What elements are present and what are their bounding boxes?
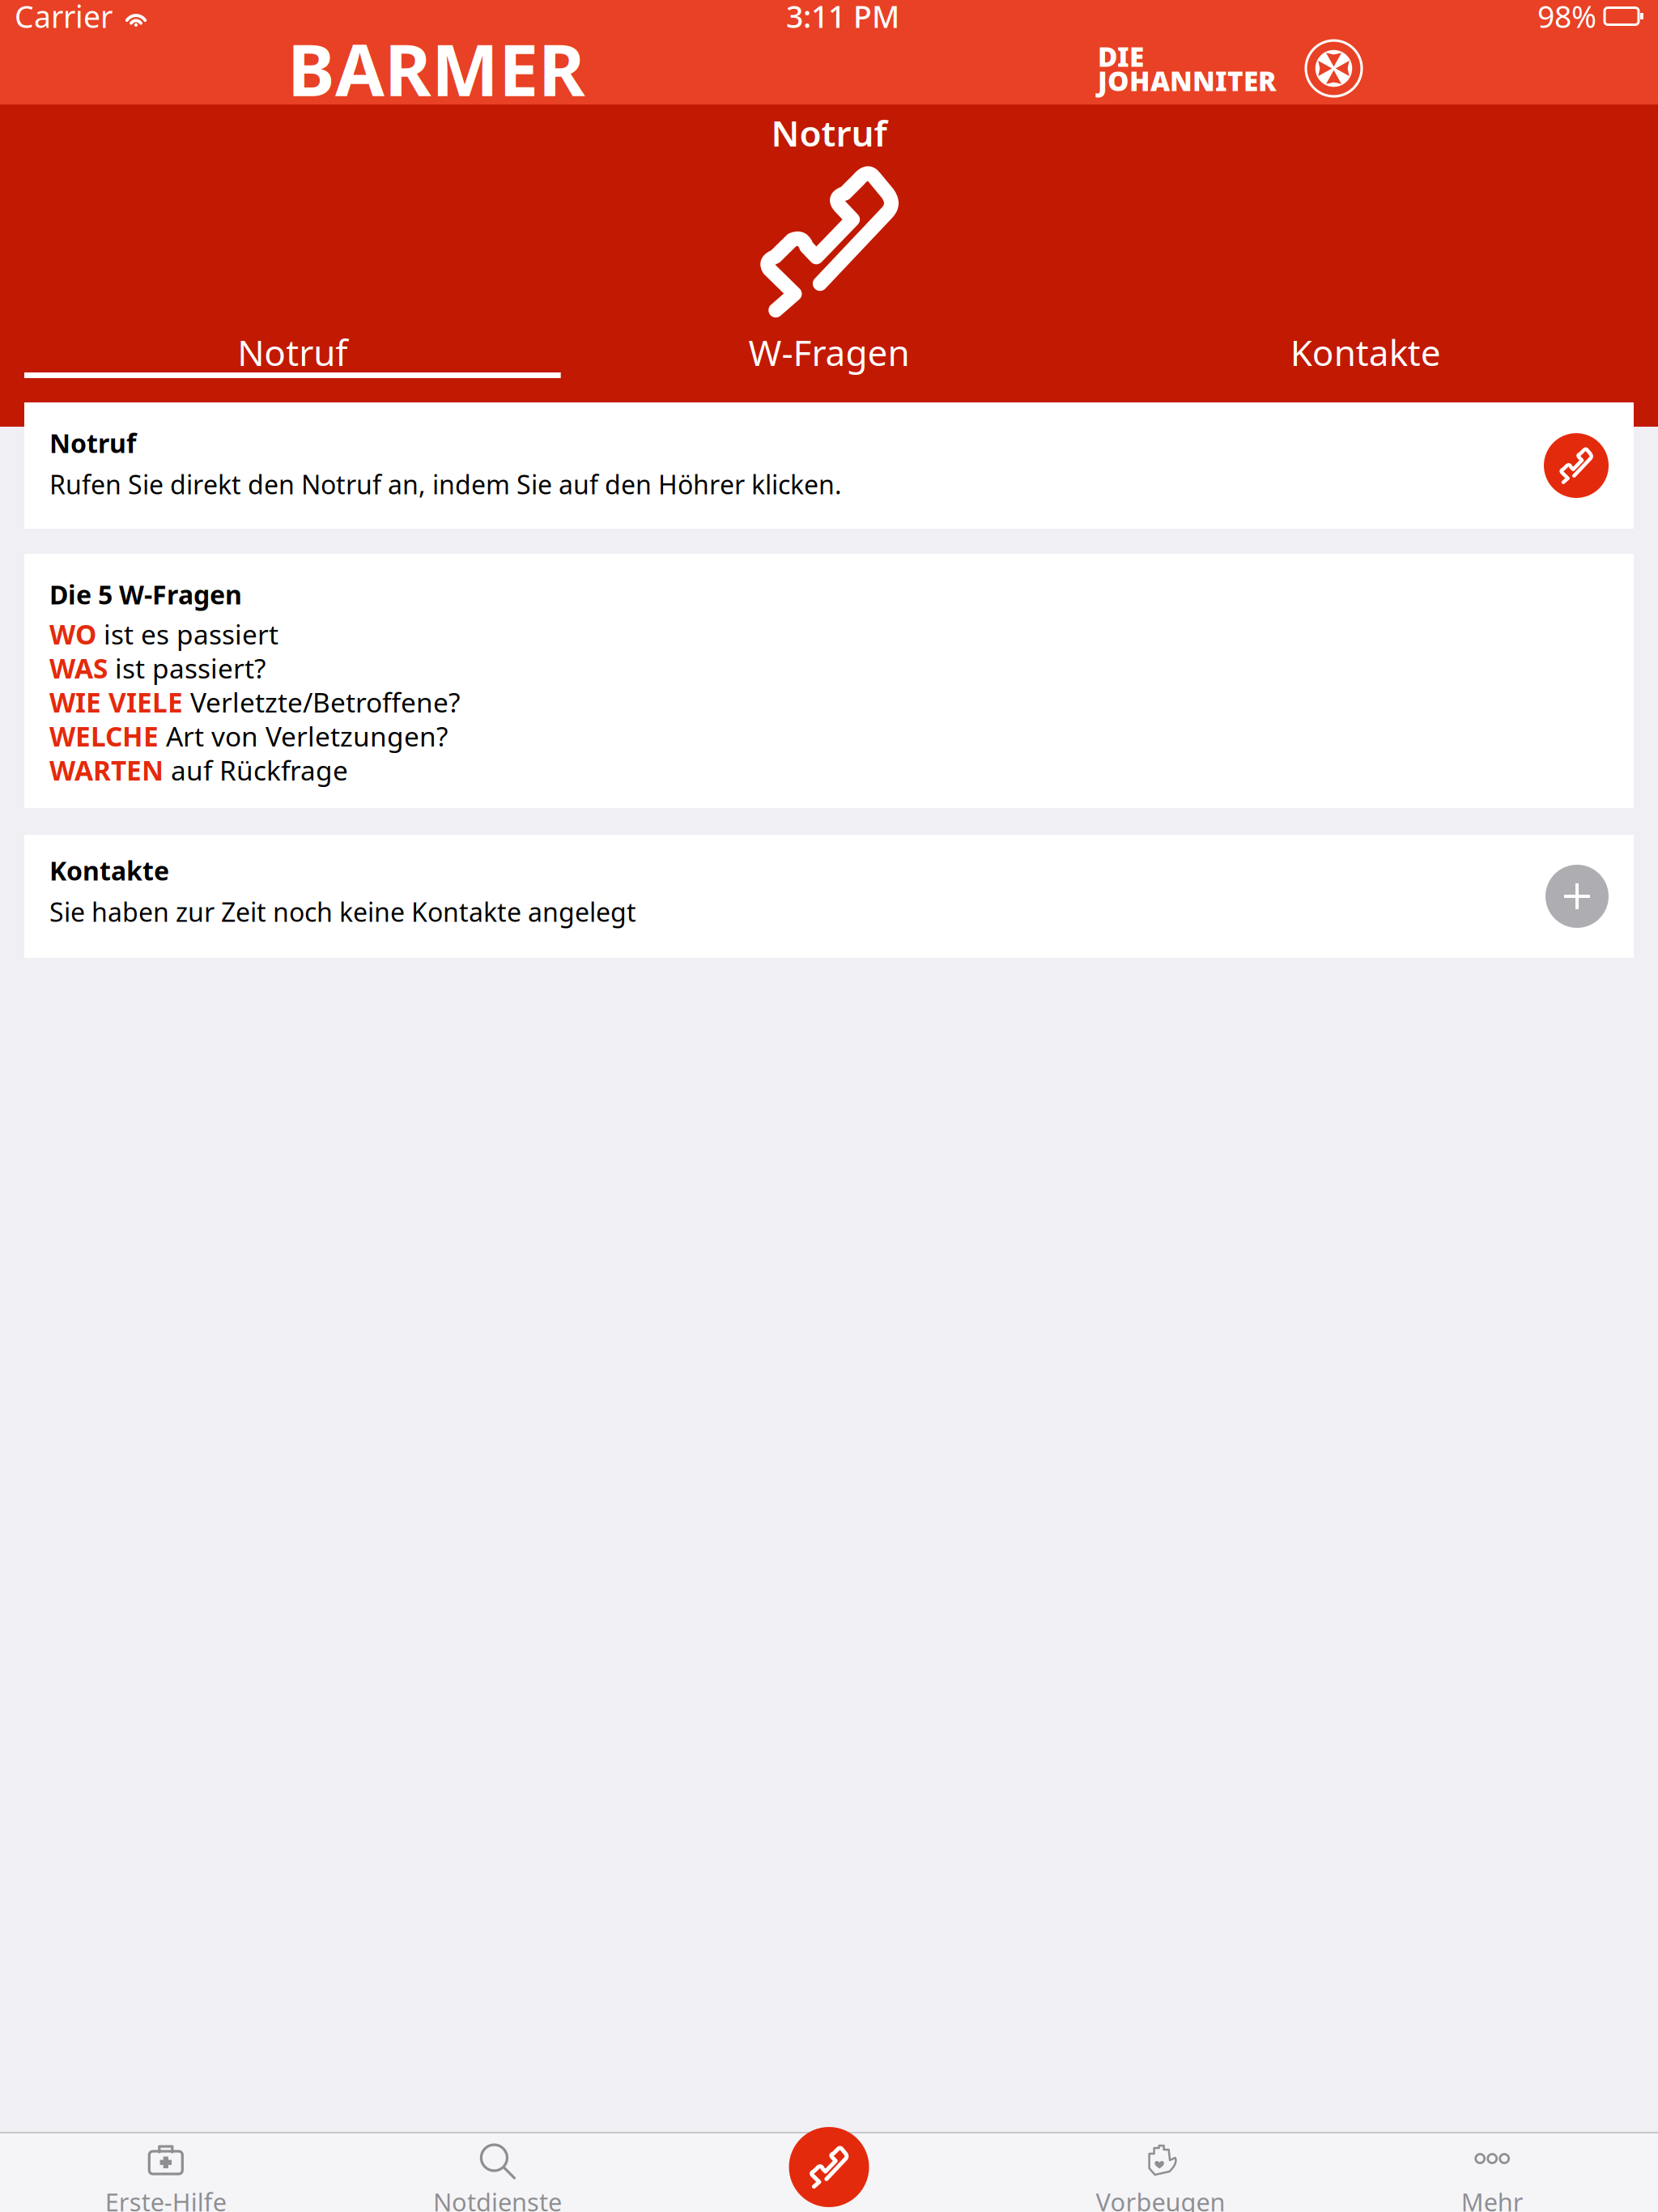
- staticText: Notruf: [237, 329, 348, 376]
- staticText: JOHANNITER: [1098, 63, 1277, 99]
- staticText: 98%: [1537, 0, 1596, 36]
- button[interactable]: Notruf: [24, 334, 561, 378]
- staticText: BARMER: [287, 21, 585, 116]
- staticText: Carrier: [15, 0, 113, 36]
- staticText: W-Fragen: [748, 329, 910, 376]
- staticText: WARTEN: [49, 752, 164, 788]
- button[interactable]: Mehr: [1326, 2133, 1658, 2212]
- staticText: Kontakte: [49, 853, 169, 888]
- staticText: WO: [49, 616, 96, 652]
- button[interactable]: W-Fragen: [561, 334, 1097, 378]
- staticText: Kontakte: [1290, 329, 1441, 376]
- button[interactable]: Vorbeugen: [995, 2133, 1326, 2212]
- staticText: 3:11 PM: [786, 0, 899, 36]
- staticText: Die 5 W-Fragen: [49, 577, 242, 612]
- staticText: auf Rückfrage: [164, 752, 348, 788]
- staticText: WAS: [49, 650, 108, 686]
- button[interactable]: Kontakt hinzufügen: [1545, 865, 1609, 928]
- staticText: Erste-Hilfe: [105, 2185, 227, 2212]
- staticText: Mehr: [1461, 2185, 1523, 2212]
- staticText: Rufen Sie direkt den Notruf an, indem Si…: [49, 467, 842, 501]
- button[interactable]: Notruf: [789, 2127, 869, 2207]
- staticText: ist es passiert: [96, 616, 278, 652]
- staticText: Notruf: [771, 109, 887, 156]
- staticText: DIE: [1098, 38, 1144, 74]
- staticText: WELCHE: [49, 718, 159, 754]
- staticText: ist passiert?: [108, 650, 266, 686]
- button[interactable]: Notruf anrufen: [1544, 433, 1609, 498]
- staticText: Sie haben zur Zeit noch keine Kontakte a…: [49, 895, 636, 929]
- staticText: Vorbeugen: [1096, 2185, 1225, 2212]
- staticText: Notruf: [49, 426, 136, 460]
- staticText: Notdienste: [433, 2185, 562, 2212]
- staticText: Verletzte/Betroffene?: [183, 684, 460, 720]
- button[interactable]: Notdienste: [332, 2133, 663, 2212]
- staticText: Art von Verletzungen?: [159, 718, 448, 754]
- button[interactable]: Erste-Hilfe: [0, 2133, 332, 2212]
- button[interactable]: Kontakte: [1097, 334, 1634, 378]
- staticText: WIE VIELE: [49, 684, 183, 720]
